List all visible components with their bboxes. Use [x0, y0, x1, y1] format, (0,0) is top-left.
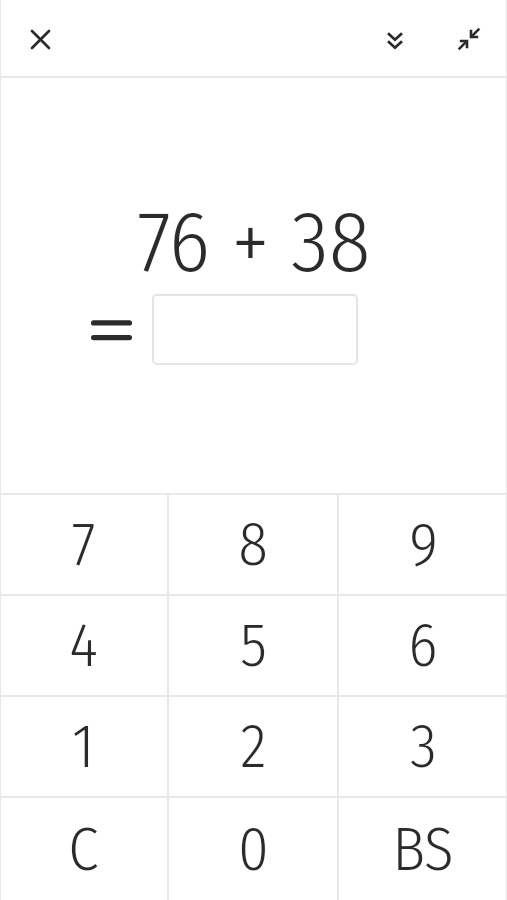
button[interactable] — [20, 19, 60, 59]
button[interactable]: 3 — [339, 697, 507, 796]
button[interactable]: BS — [339, 798, 507, 900]
staticText: BS — [392, 813, 454, 886]
button[interactable]: 2 — [169, 697, 337, 796]
button[interactable]: 0 — [169, 798, 337, 900]
staticText: 9 — [409, 508, 438, 581]
staticText: 6 — [408, 609, 438, 682]
staticText: 2 — [240, 710, 267, 783]
button[interactable]: 7 — [0, 495, 167, 594]
button[interactable] — [449, 19, 489, 59]
button[interactable]: 8 — [169, 495, 337, 594]
button[interactable] — [152, 294, 358, 365]
staticText: 1 — [72, 710, 95, 783]
button[interactable]: 9 — [339, 495, 507, 594]
staticText: 5 — [240, 609, 267, 682]
staticText: 7 — [71, 508, 96, 581]
staticText: 8 — [238, 508, 268, 581]
staticText: 4 — [69, 609, 98, 682]
button[interactable]: 1 — [0, 697, 167, 796]
button[interactable]: 4 — [0, 596, 167, 695]
staticText: 76 + 38 — [137, 191, 371, 294]
button[interactable]: 5 — [169, 596, 337, 695]
button[interactable] — [375, 19, 415, 59]
staticText: 3 — [410, 710, 437, 783]
staticText: 0 — [238, 813, 269, 886]
staticText: C — [68, 813, 99, 886]
button[interactable]: 6 — [339, 596, 507, 695]
button[interactable]: C — [0, 798, 167, 900]
